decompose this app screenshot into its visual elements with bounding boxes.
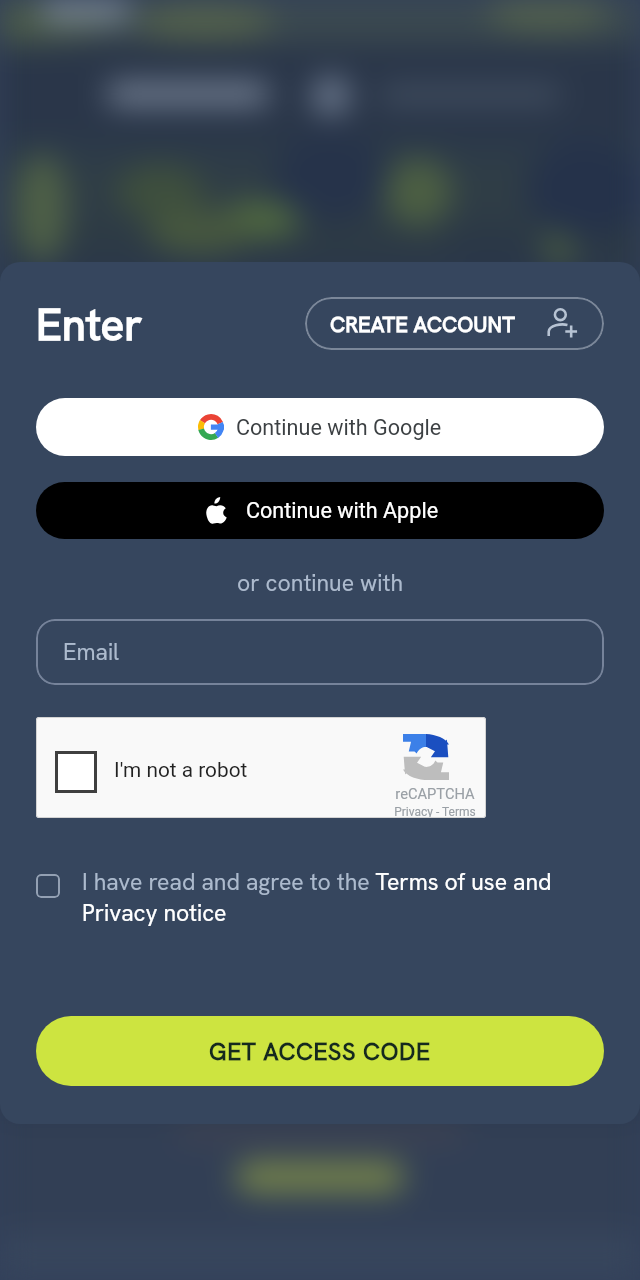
staticText: Email <box>63 637 120 667</box>
button[interactable]: I'm not a robot <box>36 717 486 818</box>
staticText: or continue with <box>237 568 404 598</box>
other: Create account <box>547 308 578 339</box>
staticText: CREATE ACCOUNT <box>330 310 515 338</box>
staticText: Continue with Apple <box>246 498 439 523</box>
button[interactable]: Continue with Google <box>36 398 604 456</box>
staticText: Enter <box>36 296 143 353</box>
staticText: Privacy - Terms <box>385 805 485 818</box>
button[interactable]: Email <box>36 619 604 685</box>
button[interactable]: CREATE ACCOUNT <box>305 297 604 350</box>
staticText: I'm not a robot <box>114 758 248 782</box>
staticText: GET ACCESS CODE <box>209 1036 431 1067</box>
button[interactable]: Continue with Apple <box>36 482 604 539</box>
button[interactable]: GET ACCESS CODE <box>36 1016 604 1086</box>
staticText: reCAPTCHA <box>385 785 485 802</box>
staticText: Continue with Google <box>236 415 442 440</box>
button[interactable]: I have read and agree to the Terms of us… <box>36 867 608 928</box>
staticText: I have read and agree to the Terms of us… <box>82 867 608 928</box>
